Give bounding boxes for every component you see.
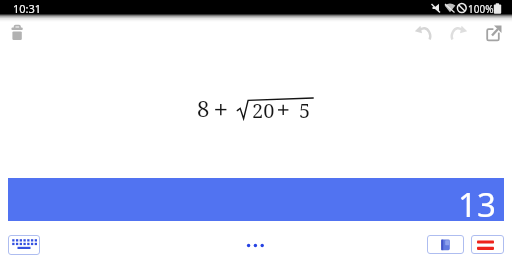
button[interactable] <box>448 24 468 42</box>
button[interactable] <box>8 235 40 255</box>
staticText: 8 <box>197 93 210 123</box>
button[interactable] <box>243 238 269 253</box>
button[interactable] <box>7 23 28 43</box>
button[interactable] <box>414 24 434 42</box>
staticText: 10:31 <box>13 1 42 16</box>
button[interactable] <box>427 235 464 254</box>
staticText: 5 <box>299 97 311 124</box>
button[interactable] <box>471 235 504 254</box>
button[interactable]: 13 <box>8 178 504 221</box>
staticText: 100% <box>468 2 494 16</box>
staticText: 20 <box>252 97 275 124</box>
button[interactable] <box>485 24 505 42</box>
staticText: 13 <box>458 182 496 225</box>
